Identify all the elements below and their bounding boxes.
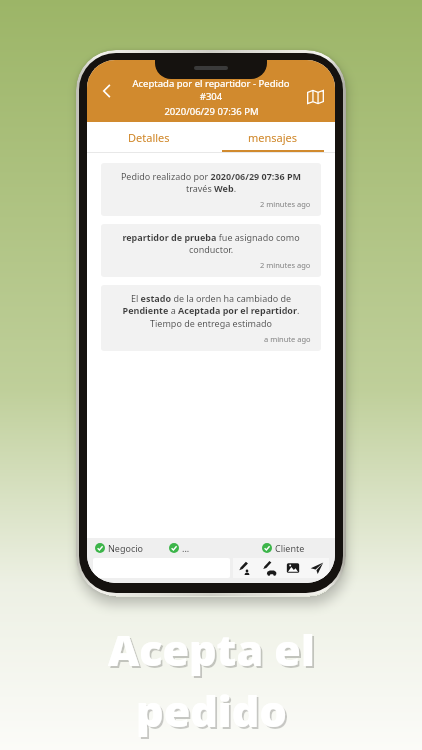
button[interactable]: Back	[91, 75, 123, 107]
staticText: Acepta el	[110, 622, 317, 681]
button[interactable]: Send	[305, 558, 329, 578]
button[interactable]: mensajes	[211, 122, 335, 152]
button[interactable]: Detalles	[87, 122, 211, 152]
staticText: Aceptada por el repartidor - Pedido #304	[121, 77, 301, 103]
staticText: ...	[182, 542, 190, 554]
staticText: Acepta el	[108, 620, 315, 679]
staticText: Negocio	[108, 542, 143, 554]
staticText: a minute ago	[264, 334, 311, 344]
staticText: pedido	[138, 683, 289, 742]
button[interactable]: Attach image	[281, 558, 305, 578]
staticText: Detalles	[128, 130, 170, 145]
button[interactable]: Pedido realizado por 2020/06/29 07:36 PM…	[101, 163, 321, 216]
button[interactable]: ...	[167, 542, 192, 554]
staticText: repartidor de prueba fue asignado como c…	[111, 231, 311, 256]
staticText: Cliente	[275, 542, 305, 554]
button[interactable]	[93, 558, 230, 578]
button[interactable]: Sign driver	[257, 558, 281, 578]
staticText: mensajes	[248, 130, 298, 145]
button[interactable]: Cliente	[260, 542, 307, 554]
staticText: 2 minutes ago	[260, 199, 311, 209]
button[interactable]: Map	[301, 82, 329, 110]
staticText: Pedido realizado por 2020/06/29 07:36 PM…	[111, 170, 311, 195]
button[interactable]: Sign customer	[233, 558, 257, 578]
button[interactable]: Negocio	[93, 542, 145, 554]
button[interactable]: El estado de la orden ha cambiado de Pen…	[101, 285, 321, 351]
staticText: pedido	[136, 681, 287, 740]
staticText: 2020/06/29 07:36 PM	[164, 105, 259, 118]
button[interactable]: repartidor de prueba fue asignado como c…	[101, 224, 321, 277]
staticText: El estado de la orden ha cambiado de Pen…	[111, 292, 311, 330]
staticText: 2 minutes ago	[260, 260, 311, 270]
